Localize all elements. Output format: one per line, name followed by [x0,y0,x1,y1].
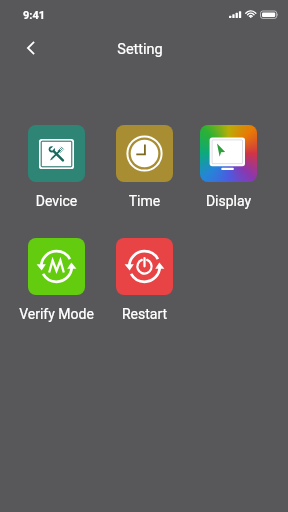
staticText: Setting [0,41,284,58]
button[interactable]: Restart [102,238,187,322]
staticText: Device [14,193,99,209]
button[interactable]: Verify Mode [14,238,99,322]
button[interactable]: Display [186,125,271,209]
staticText: Restart [102,306,187,322]
staticText: Time [102,193,187,209]
button[interactable]: Back [17,34,45,62]
button[interactable]: Time [102,125,187,209]
staticText: 9:41 [23,9,46,22]
staticText: Display [186,193,271,209]
staticText: Verify Mode [14,306,99,322]
button[interactable]: Device [14,125,99,209]
